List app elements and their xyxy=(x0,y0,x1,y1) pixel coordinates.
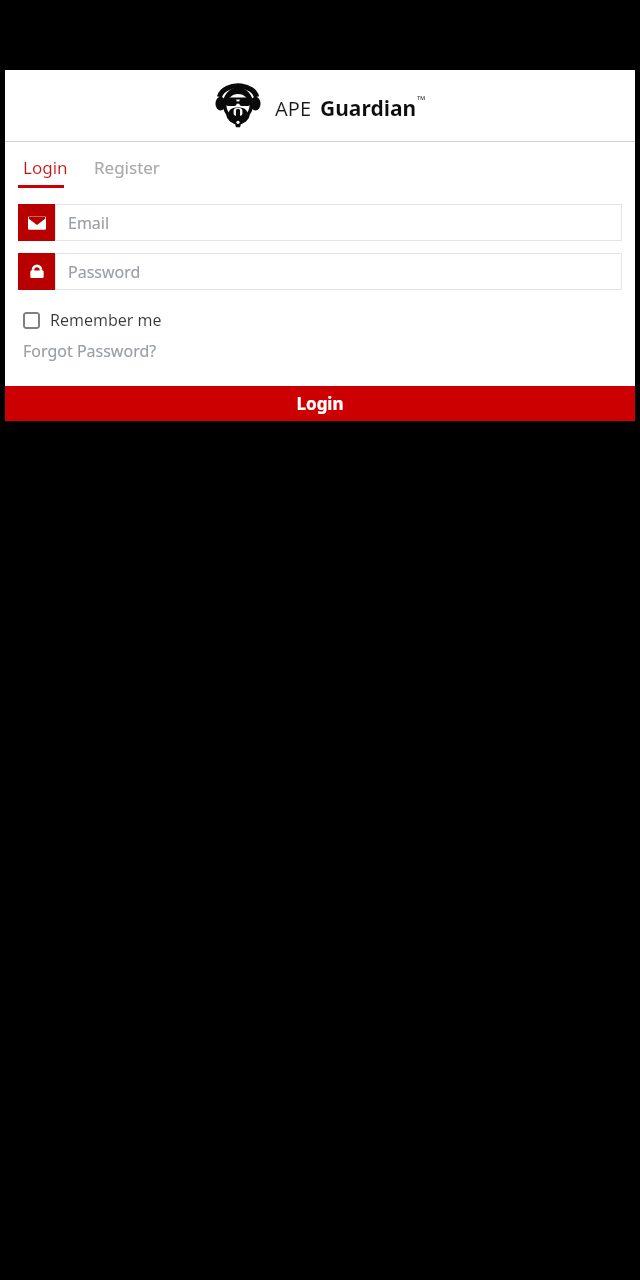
button[interactable]: Remember me xyxy=(23,306,170,334)
staticText: Login xyxy=(23,156,68,179)
button[interactable]: Email xyxy=(18,204,622,241)
staticText: Forgot Password? xyxy=(23,340,157,362)
staticText: ™ xyxy=(417,92,426,107)
other: Email xyxy=(18,204,55,241)
staticText: Login xyxy=(296,392,344,415)
button[interactable]: Login xyxy=(18,152,73,188)
staticText: Guardian xyxy=(320,94,417,123)
other: APE Guardian logo xyxy=(215,83,261,129)
staticText: Password xyxy=(68,261,141,283)
button[interactable]: Login xyxy=(5,386,635,421)
button[interactable]: Forgot Password? xyxy=(23,338,165,364)
staticText: APE xyxy=(275,95,311,122)
button[interactable]: Password xyxy=(18,253,622,290)
staticText: Email xyxy=(68,212,110,234)
button[interactable]: Register xyxy=(89,152,165,185)
staticText: Remember me xyxy=(50,309,162,331)
staticText: Register xyxy=(94,156,160,179)
other: Password xyxy=(18,253,55,290)
